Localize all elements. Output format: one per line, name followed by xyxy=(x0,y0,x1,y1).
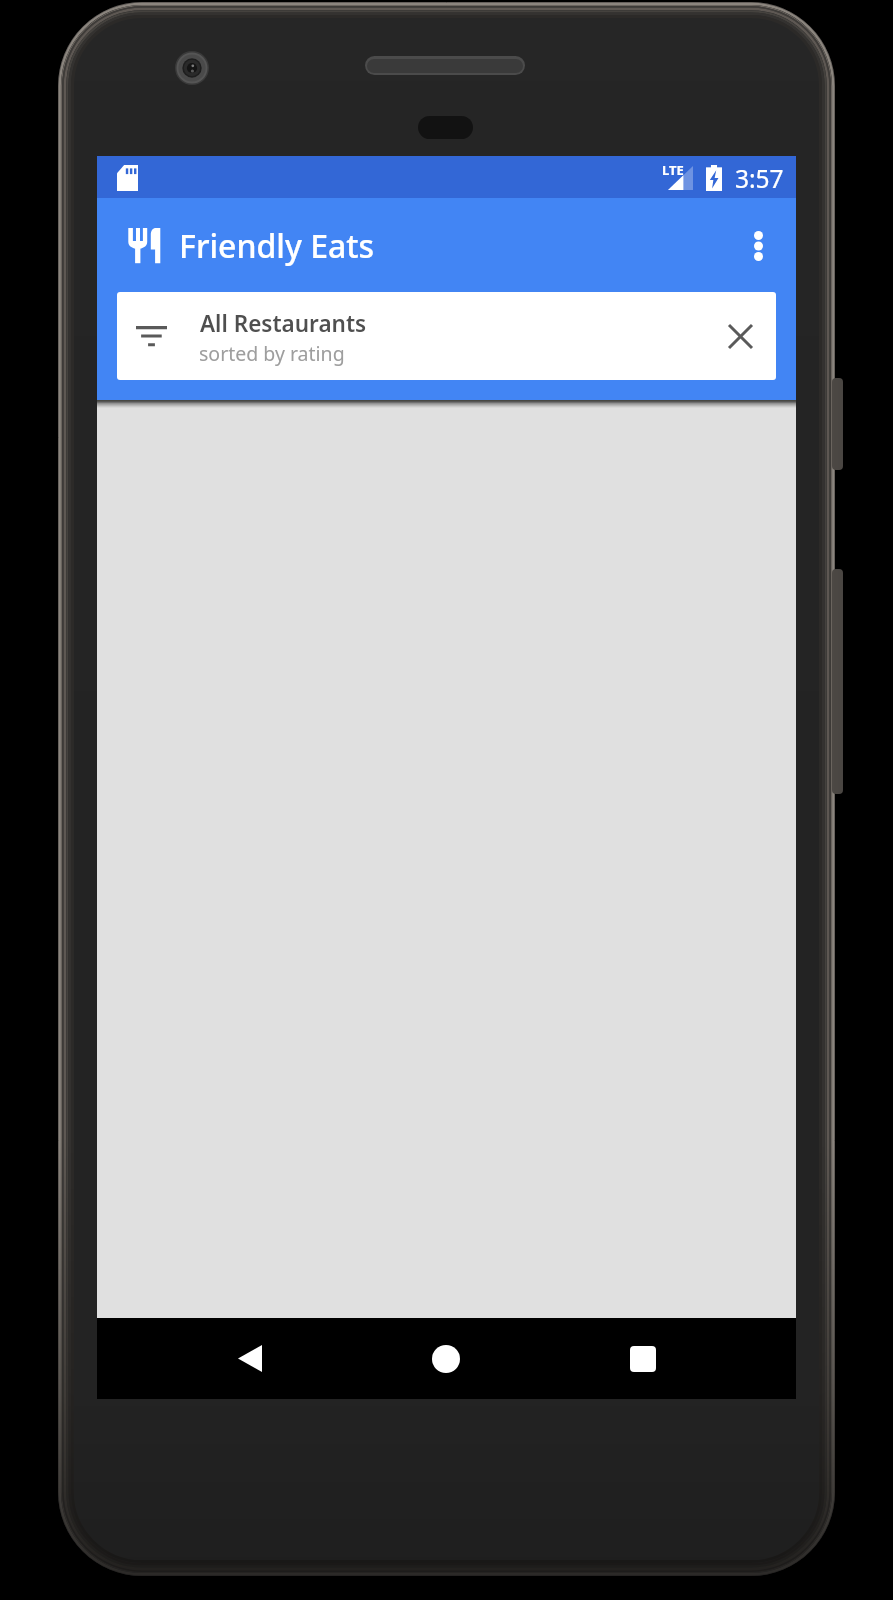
button[interactable]: All Restaurants xyxy=(117,292,776,380)
staticText: All Restaurants xyxy=(200,308,367,339)
staticText: Friendly Eats xyxy=(179,224,375,268)
button[interactable]: More options xyxy=(726,210,790,282)
button[interactable]: Clear filters xyxy=(705,292,776,380)
staticText: sorted by rating xyxy=(199,340,345,367)
button[interactable]: Back xyxy=(210,1318,290,1399)
button[interactable]: Home xyxy=(406,1318,486,1399)
staticText: LTE xyxy=(662,161,684,179)
button[interactable]: Recent apps xyxy=(603,1318,683,1399)
staticText: 3:57 xyxy=(735,162,784,195)
